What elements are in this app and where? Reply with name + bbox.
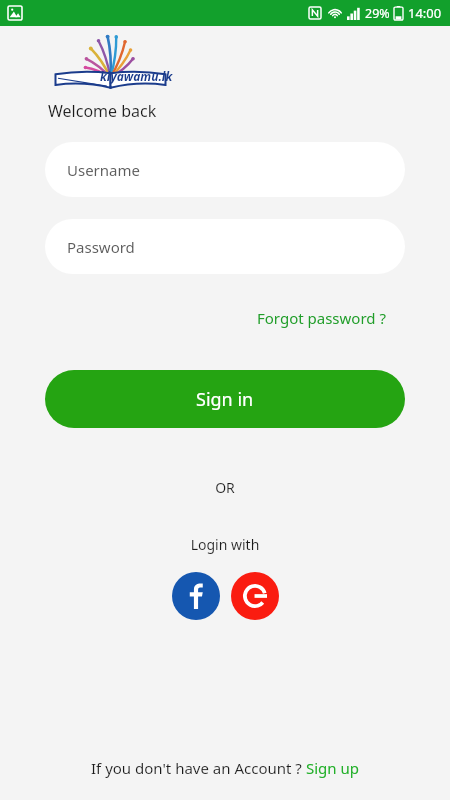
button[interactable]: Sign in: [45, 370, 405, 428]
button[interactable]: Login with Google: [231, 572, 279, 620]
button[interactable]: Forgot password ?: [255, 304, 388, 332]
button[interactable]: Sign up: [306, 758, 359, 778]
staticText: kiyawamu.lk: [100, 68, 173, 84]
staticText: If you don't have an Account ?: [91, 758, 306, 778]
staticText: OR: [0, 478, 450, 497]
staticText: Forgot password ?: [257, 308, 386, 328]
button[interactable]: Password: [45, 219, 405, 274]
staticText: Sign in: [196, 387, 254, 412]
staticText: Login with: [0, 535, 450, 554]
staticText: Welcome back: [48, 100, 157, 122]
staticText: 29%: [365, 5, 390, 22]
staticText: Sign up: [306, 758, 359, 778]
button[interactable]: Login with Facebook: [172, 572, 220, 620]
staticText: Password: [67, 237, 135, 257]
staticText: 14:00: [408, 4, 442, 22]
button[interactable]: Username: [45, 142, 405, 197]
staticText: Username: [67, 160, 140, 180]
